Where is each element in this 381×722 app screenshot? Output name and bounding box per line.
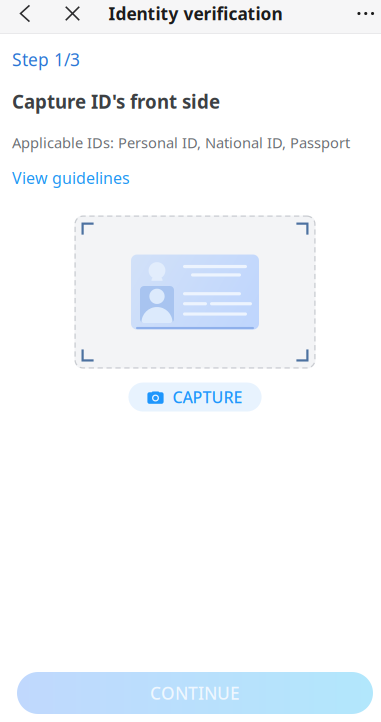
staticText: Capture ID's front side	[12, 89, 220, 114]
button[interactable]: CAPTURE	[128, 382, 262, 411]
staticText: Applicable IDs: Personal ID, National ID…	[12, 133, 350, 152]
staticText: Step 1/3	[12, 48, 80, 71]
staticText: CONTINUE	[150, 681, 240, 704]
button[interactable]: Close	[50, 0, 95, 30]
button[interactable]: Back	[0, 0, 50, 30]
button[interactable]: View guidelines	[12, 152, 130, 188]
button[interactable]: More options	[350, 0, 381, 30]
staticText: View guidelines	[12, 167, 130, 188]
staticText: Identity verification	[108, 2, 282, 25]
button[interactable]: CONTINUE	[17, 672, 373, 714]
staticText: CAPTURE	[173, 386, 243, 408]
